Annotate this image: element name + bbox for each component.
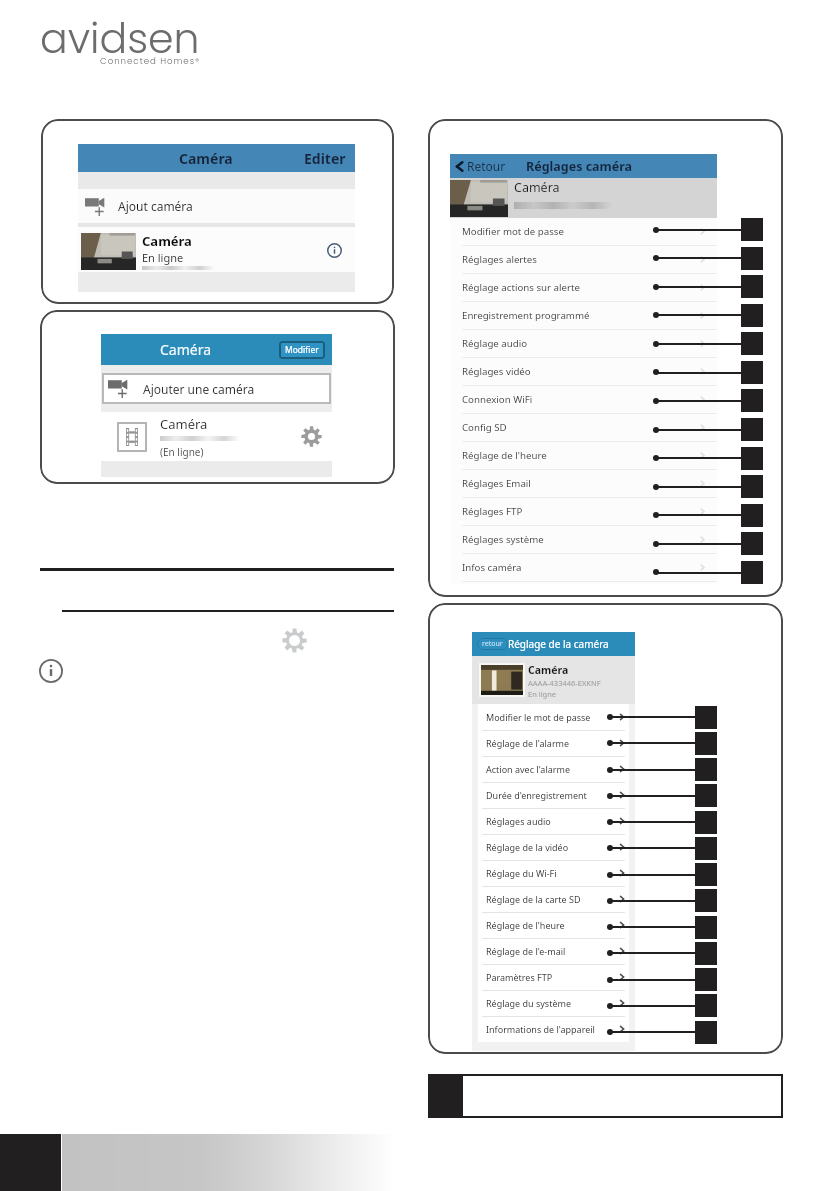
staticText: Informations de l'appareil — [486, 1023, 595, 1035]
staticText: Action avec l'alarme — [486, 763, 570, 775]
staticText: AAAA-433446-EXKNF — [528, 678, 601, 688]
button[interactable]: Infos caméra — [450, 554, 717, 582]
staticText: Réglage actions sur alerte — [462, 281, 580, 294]
button[interactable]: Modifier — [285, 344, 319, 356]
staticText: En ligne — [142, 250, 184, 265]
staticText: Enregistrement programmé — [462, 309, 590, 322]
staticText: Ajouter une caméra — [143, 381, 255, 397]
staticText: Réglages vidéo — [462, 365, 531, 378]
button[interactable]: Caméra — [101, 334, 332, 365]
staticText: Réglages caméra — [526, 158, 633, 175]
button[interactable]: Réglages système — [450, 526, 717, 554]
button[interactable]: Informations — [39, 659, 63, 683]
button[interactable]: Réglage du Wi-Fi — [478, 860, 629, 886]
staticText: Réglage de l'heure — [462, 449, 547, 462]
button[interactable]: Réglages alertes — [450, 246, 717, 274]
staticText: (En ligne) — [160, 445, 204, 459]
staticText: En ligne — [528, 689, 557, 699]
button[interactable]: Modifier le mot de passe — [478, 704, 629, 730]
button[interactable]: Caméra — [101, 412, 332, 461]
button[interactable]: Réglages FTP — [450, 498, 717, 526]
button[interactable]: Réglage de l'e-mail — [478, 938, 629, 964]
button[interactable]: Réglage de l'heure — [478, 912, 629, 938]
button[interactable]: Action avec l'alarme — [478, 756, 629, 782]
staticText: Réglages FTP — [462, 505, 523, 518]
button[interactable]: Réglages Email — [450, 470, 717, 498]
staticText: Réglage de l'alarme — [486, 737, 570, 749]
staticText: Réglage de la carte SD — [486, 893, 581, 905]
staticText: Caméra — [160, 415, 208, 433]
staticText: Ajout caméra — [118, 198, 193, 214]
staticText: Caméra — [179, 149, 233, 168]
button[interactable]: Modifier mot de passe — [450, 218, 717, 246]
staticText: Retour — [467, 158, 506, 174]
button[interactable]: Réglage de l'alarme — [478, 730, 629, 756]
staticText: Modifier mot de passe — [462, 225, 564, 238]
staticText: Réglage de l'e-mail — [486, 945, 566, 957]
button[interactable]: Enregistrement programmé — [450, 302, 717, 330]
button[interactable]: Réglages — [301, 426, 322, 447]
button[interactable]: Réglage audio — [450, 330, 717, 358]
staticText: Config SD — [462, 421, 507, 434]
button[interactable]: Réglages vidéo — [450, 358, 717, 386]
staticText: avidsen — [40, 10, 200, 67]
staticText: Infos caméra — [462, 561, 522, 574]
button[interactable]: Réglages audio — [478, 808, 629, 834]
staticText: Connexion WiFi — [462, 393, 533, 406]
staticText: Modifier — [285, 344, 319, 356]
staticText: Réglages système — [462, 533, 544, 546]
staticText: Connected Homes® — [100, 55, 201, 67]
button[interactable]: retour — [472, 632, 635, 656]
button[interactable]: Paramètres FTP — [478, 964, 629, 990]
button[interactable]: Ajouter une caméra — [102, 373, 331, 404]
button[interactable]: Réglage de l'heure — [450, 442, 717, 470]
staticText: Caméra — [160, 340, 212, 359]
staticText: Durée d'enregistrement — [486, 789, 587, 801]
staticText: Caméra — [514, 179, 560, 196]
button[interactable]: Connexion WiFi — [450, 386, 717, 414]
button[interactable]: Réglage de la carte SD — [478, 886, 629, 912]
staticText: Réglage du système — [486, 997, 571, 1009]
staticText: Réglages alertes — [462, 253, 537, 266]
staticText: Caméra — [142, 232, 192, 250]
button[interactable]: Info — [327, 243, 342, 258]
button[interactable]: Informations de l'appareil — [478, 1016, 629, 1042]
button[interactable]: Réglage du système — [478, 990, 629, 1016]
button[interactable]: Réglage de la vidéo — [478, 834, 629, 860]
staticText: Réglages audio — [486, 815, 551, 827]
button[interactable]: Réglage actions sur alerte — [450, 274, 717, 302]
staticText: Paramètres FTP — [486, 971, 553, 983]
button[interactable]: Ajout caméra — [78, 189, 355, 223]
staticText: Réglages Email — [462, 477, 531, 490]
button[interactable]: Réglages — [282, 628, 307, 653]
button[interactable]: Caméra — [78, 144, 355, 172]
staticText: Réglage de la caméra — [508, 637, 609, 651]
staticText: Modifier le mot de passe — [486, 711, 591, 723]
button[interactable]: Retour — [450, 154, 717, 178]
staticText: Editer — [304, 149, 346, 168]
staticText: Réglage audio — [462, 337, 528, 350]
button[interactable]: Caméra — [78, 227, 355, 272]
staticText: Réglage de l'heure — [486, 919, 565, 931]
staticText: retour — [482, 639, 503, 649]
staticText: Réglage de la vidéo — [486, 841, 569, 853]
staticText: Réglage du Wi-Fi — [486, 867, 557, 879]
staticText: Caméra — [528, 663, 569, 677]
button[interactable]: Durée d'enregistrement — [478, 782, 629, 808]
button[interactable]: Config SD — [450, 414, 717, 442]
